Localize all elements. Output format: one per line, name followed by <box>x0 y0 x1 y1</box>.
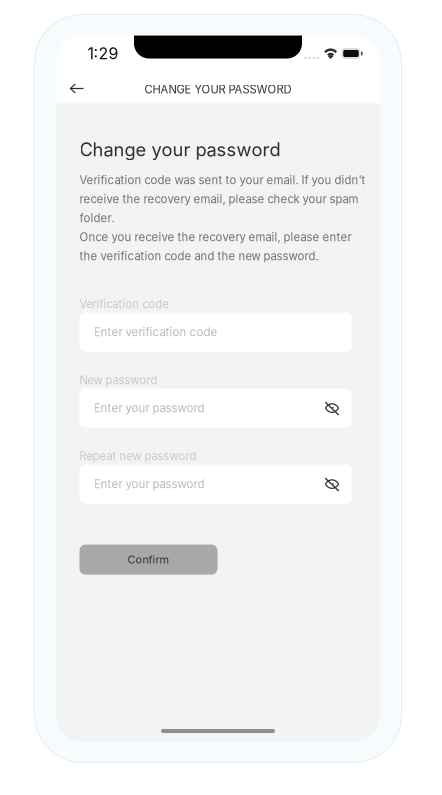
staticText: New password <box>79 373 157 387</box>
staticText: CHANGE YOUR PASSWORD <box>144 83 291 96</box>
staticText: Verification code was sent to your email… <box>79 173 365 187</box>
staticText: Enter your password <box>93 477 204 491</box>
staticText: Enter your password <box>93 401 204 415</box>
button[interactable]: Enter your password <box>79 389 351 428</box>
staticText: the verification code and the new passwo… <box>79 249 318 263</box>
staticText: Change your password <box>79 138 280 161</box>
staticText: receive the recovery email, please check… <box>79 192 358 206</box>
staticText: 1:29 <box>87 44 118 63</box>
staticText: Repeat new password <box>79 449 196 463</box>
staticText: Confirm <box>127 553 169 566</box>
staticText: Once you receive the recovery email, ple… <box>79 230 351 244</box>
staticText: folder. <box>79 211 114 225</box>
button[interactable]: Enter your password <box>79 465 351 504</box>
button[interactable]: Back <box>62 76 90 100</box>
staticText: Verification code <box>79 297 168 311</box>
button[interactable]: Confirm <box>79 545 217 575</box>
button[interactable]: Enter verification code <box>79 313 351 352</box>
staticText: Enter verification code <box>93 325 217 339</box>
